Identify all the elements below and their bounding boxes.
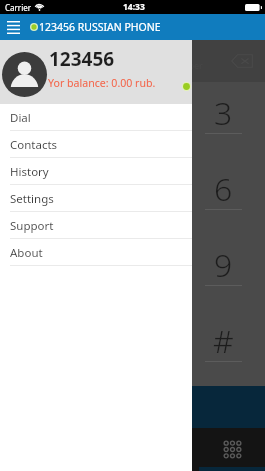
staticText: Dial [10,110,31,126]
button[interactable]: 5 [89,158,177,234]
staticText: Yor balance: 0.00 rub. [48,76,156,90]
button[interactable]: Keypad [199,428,265,471]
staticText: 5 [126,167,145,211]
staticText: 6 [214,167,233,211]
staticText: # [213,319,234,363]
staticText: Support [10,218,54,234]
staticText: Carrier [5,2,32,13]
staticText: About [10,245,43,261]
staticText: 14:33 [123,1,145,13]
staticText: 9 [214,243,233,287]
staticText: History [10,164,49,180]
button[interactable]: Support [0,212,192,239]
button[interactable]: History [0,158,192,185]
button[interactable]: Dial [0,104,192,131]
button[interactable]: 8 [89,234,177,310]
button[interactable]: 3 [177,82,265,158]
button[interactable]: # [177,310,265,386]
button[interactable]: 4 [0,158,89,234]
button[interactable]: 7 [0,234,89,310]
button[interactable]: About [0,239,192,266]
button[interactable]: Call [0,386,265,428]
staticText: 1 [37,91,56,135]
staticText: 7 [37,243,56,287]
button[interactable]: Favorites [133,428,199,471]
staticText: 2 [126,91,145,135]
staticText: Settings [10,191,54,207]
staticText: 123456 [49,46,115,72]
button[interactable]: Contacts [0,131,192,158]
staticText: 123456 RUSSIAN PHONE [39,20,161,34]
staticText: Contacts [10,137,58,153]
button[interactable]: 9 [177,234,265,310]
staticText: 4 [37,167,56,211]
staticText: 3 [214,91,233,135]
button[interactable]: 6 [177,158,265,234]
staticText: Enter number [144,59,203,71]
staticText: 8 [126,243,145,287]
button[interactable]: Open navigation menu [4,18,22,36]
button[interactable]: 2 [89,82,177,158]
button[interactable]: 1 [0,82,89,158]
button[interactable]: Settings [0,185,192,212]
